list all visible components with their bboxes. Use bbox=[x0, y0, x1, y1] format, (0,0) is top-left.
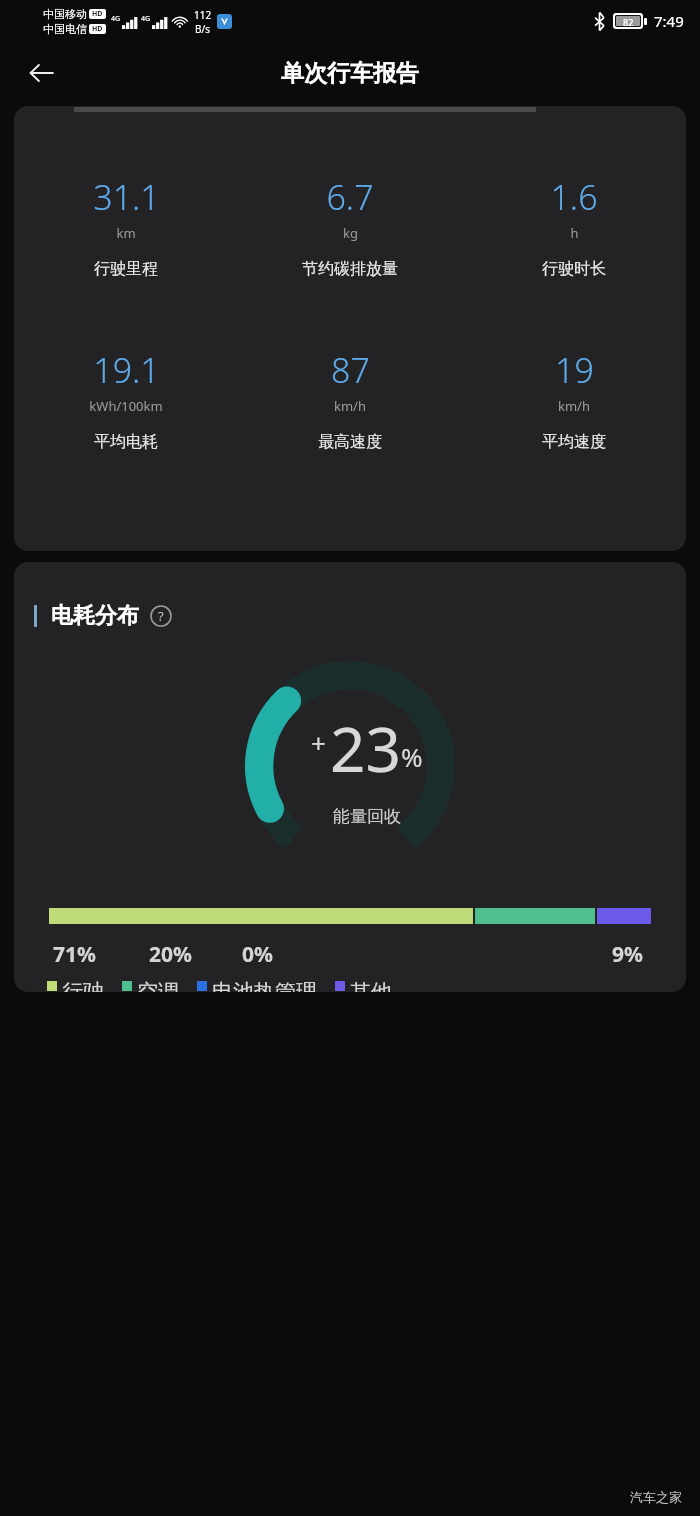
staticText: B/s bbox=[195, 22, 211, 36]
staticText: HD bbox=[92, 24, 103, 34]
staticText: 行驶时长 bbox=[542, 259, 606, 279]
button[interactable]: 31.1 bbox=[14, 106, 686, 551]
staticText: kWh/100km bbox=[89, 397, 163, 415]
staticText: 31.1 bbox=[93, 174, 160, 220]
staticText: h bbox=[570, 224, 579, 242]
staticText: 6.7 bbox=[326, 174, 374, 220]
staticText: 23 bbox=[330, 706, 401, 790]
staticText: + bbox=[311, 725, 326, 760]
staticText: 4G bbox=[141, 14, 151, 24]
staticText: 行驶 bbox=[62, 979, 104, 992]
staticText: HD bbox=[92, 9, 103, 19]
staticText: 中国移动 bbox=[43, 7, 87, 21]
button[interactable]: 返回 bbox=[14, 45, 70, 101]
button[interactable]: 行驶 bbox=[47, 979, 104, 992]
staticText: 汽车之家 bbox=[630, 1489, 682, 1505]
staticText: 4G bbox=[111, 14, 121, 24]
staticText: 71% bbox=[53, 940, 96, 969]
staticText: 空调 bbox=[137, 979, 179, 992]
staticText: 单次行车报告 bbox=[281, 59, 419, 88]
staticText: 能量回收 bbox=[333, 806, 401, 827]
staticText: 平均速度 bbox=[542, 432, 606, 452]
staticText: 20% bbox=[149, 940, 192, 969]
staticText: 112 bbox=[194, 8, 212, 22]
staticText: km/h bbox=[334, 397, 366, 415]
staticText: ? bbox=[158, 607, 164, 625]
staticText: 平均电耗 bbox=[94, 432, 158, 452]
staticText: 0% bbox=[242, 940, 273, 969]
staticText: 中国电信 bbox=[43, 22, 87, 36]
staticText: 其他 bbox=[350, 979, 392, 992]
button[interactable]: 其他 bbox=[335, 979, 392, 992]
staticText: 87 bbox=[331, 347, 370, 393]
staticText: 行驶里程 bbox=[94, 259, 158, 279]
button[interactable]: 电耗分布 bbox=[34, 602, 686, 630]
staticText: 电耗分布 bbox=[51, 602, 139, 630]
staticText: 9% bbox=[612, 940, 643, 969]
staticText: 1.6 bbox=[550, 174, 598, 220]
staticText: 电池热管理 bbox=[212, 979, 317, 992]
button[interactable]: 空调 bbox=[122, 979, 179, 992]
staticText: km/h bbox=[558, 397, 590, 415]
staticText: 82 bbox=[623, 16, 634, 26]
button[interactable]: 电池热管理 bbox=[197, 979, 317, 992]
staticText: 19.1 bbox=[93, 347, 160, 393]
staticText: % bbox=[401, 739, 423, 774]
staticText: 节约碳排放量 bbox=[302, 259, 398, 279]
staticText: kg bbox=[343, 224, 358, 242]
staticText: 最高速度 bbox=[318, 432, 382, 452]
staticText: 19 bbox=[555, 347, 594, 393]
staticText: 7:49 bbox=[654, 11, 684, 31]
button[interactable]: 帮助 bbox=[149, 604, 173, 628]
staticText: km bbox=[116, 224, 136, 242]
